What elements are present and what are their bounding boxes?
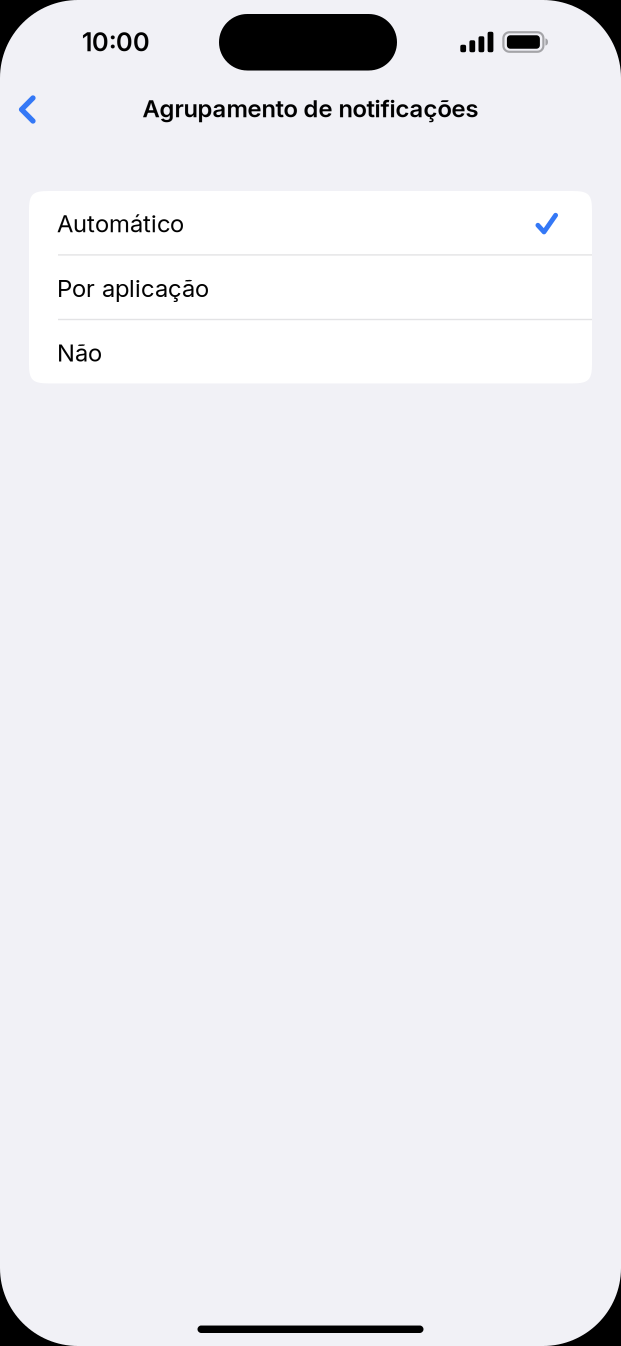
staticText: Automático <box>57 209 184 238</box>
button[interactable]: Automático <box>29 191 592 254</box>
staticText: Não <box>57 338 102 367</box>
button[interactable]: Voltar <box>0 80 54 136</box>
staticText: 10:00 <box>82 27 150 57</box>
button[interactable]: Por aplicação <box>29 256 592 319</box>
staticText: Por aplicação <box>57 274 209 303</box>
staticText: Agrupamento de notificações <box>142 94 478 123</box>
button[interactable]: Não <box>29 320 592 383</box>
